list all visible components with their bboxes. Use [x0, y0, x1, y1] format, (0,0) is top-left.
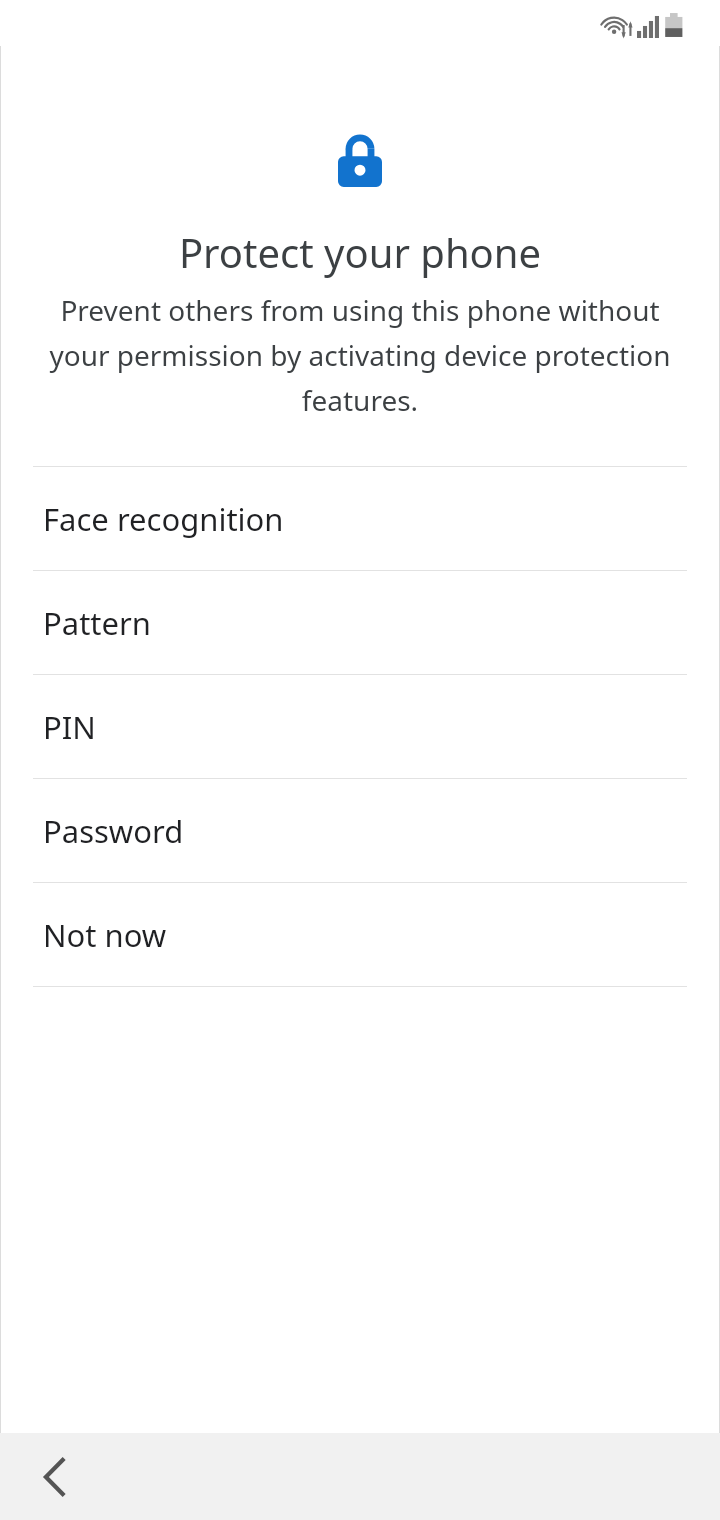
- button[interactable]: Password: [0, 779, 720, 882]
- staticText: Not now: [43, 914, 167, 956]
- button[interactable]: Face recognition: [0, 467, 720, 570]
- button[interactable]: Back: [14, 1447, 96, 1507]
- staticText: Pattern: [43, 602, 151, 644]
- button[interactable]: Not now: [0, 883, 720, 986]
- staticText: Prevent others from using this phone wit…: [44, 291, 676, 420]
- staticText: Protect your phone: [0, 225, 720, 279]
- button[interactable]: PIN: [0, 675, 720, 778]
- staticText: Face recognition: [43, 498, 284, 540]
- staticText: Password: [43, 810, 184, 852]
- staticText: PIN: [43, 706, 96, 748]
- button[interactable]: Pattern: [0, 571, 720, 674]
